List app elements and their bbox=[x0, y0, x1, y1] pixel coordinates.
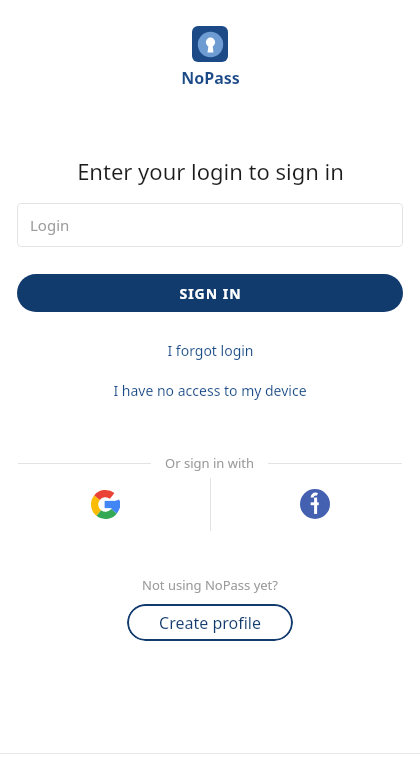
staticText: I forgot login bbox=[167, 341, 254, 360]
button[interactable]: Sign in with Facebook bbox=[293, 482, 337, 526]
staticText: I have no access to my device bbox=[113, 381, 307, 400]
staticText: Create profile bbox=[159, 612, 261, 634]
other: NoPass logo bbox=[192, 26, 228, 62]
button[interactable]: Sign in with Google bbox=[83, 482, 127, 526]
staticText: Not using NoPass yet? bbox=[142, 576, 278, 594]
button[interactable]: Login bbox=[17, 203, 403, 247]
staticText: Login bbox=[30, 215, 70, 235]
staticText: Or sign in with bbox=[165, 454, 254, 472]
button[interactable]: SIGN IN bbox=[17, 274, 403, 312]
button[interactable]: I forgot login bbox=[159, 339, 262, 362]
staticText: SIGN IN bbox=[179, 284, 242, 303]
staticText: Enter your login to sign in bbox=[77, 156, 344, 186]
staticText: NoPass bbox=[181, 67, 240, 89]
button[interactable]: Create profile bbox=[127, 604, 293, 641]
button[interactable]: I have no access to my device bbox=[105, 379, 315, 402]
